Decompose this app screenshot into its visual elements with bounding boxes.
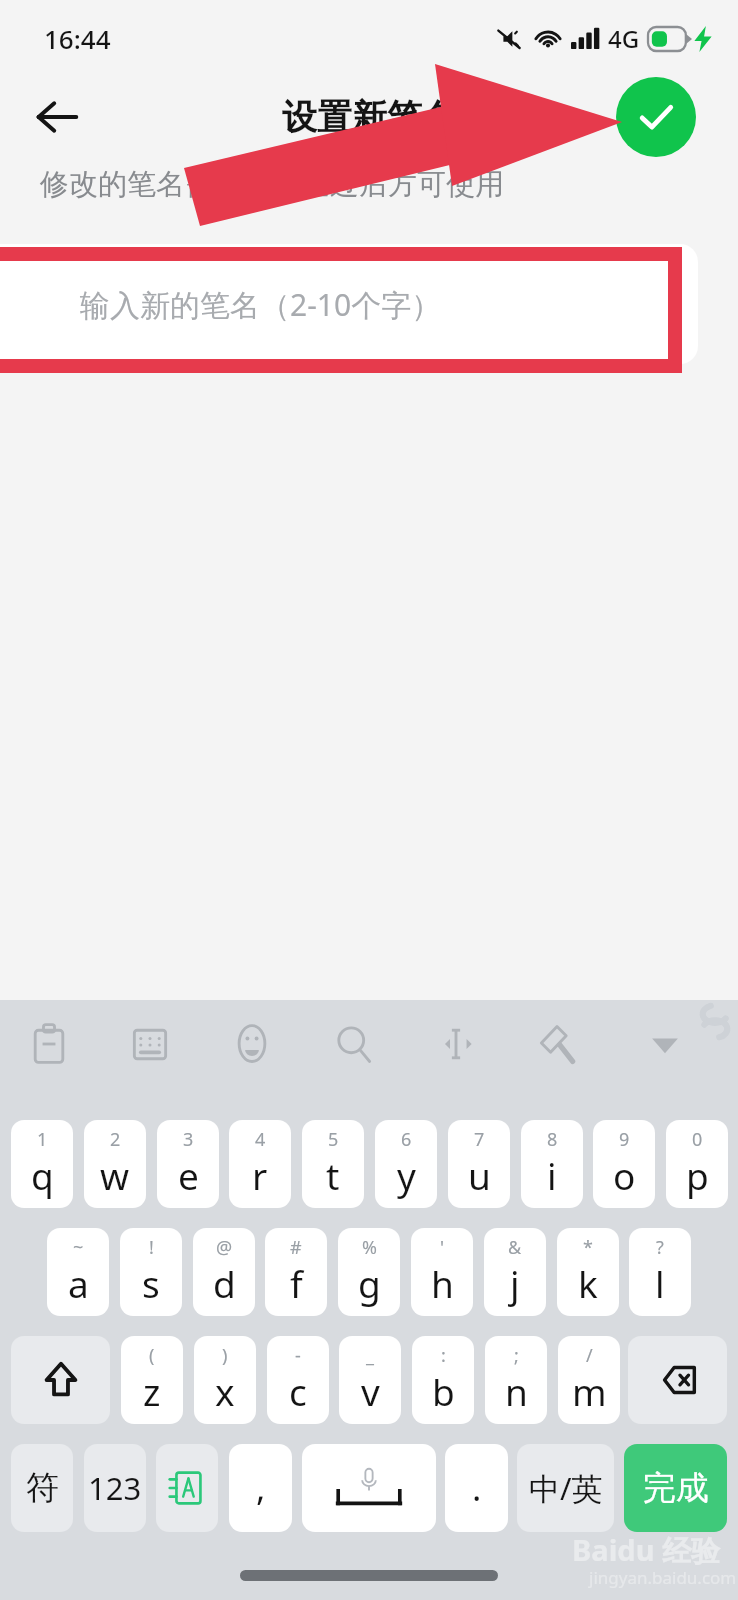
staticText: 设置新笔名 — [282, 95, 457, 139]
button[interactable]: 1 — [11, 1120, 73, 1208]
button[interactable]: % — [338, 1228, 400, 1316]
button[interactable]: 完成 — [624, 1444, 727, 1532]
button[interactable]: Search — [320, 1010, 388, 1078]
staticText: - — [295, 1343, 301, 1368]
staticText: / — [586, 1343, 593, 1368]
button[interactable]: ? — [629, 1228, 691, 1316]
staticText: 完成 — [643, 1467, 709, 1509]
staticText: b — [432, 1366, 455, 1416]
button[interactable]: 5 — [302, 1120, 364, 1208]
staticText: y — [397, 1150, 416, 1200]
button[interactable]: Move cursor — [422, 1010, 490, 1078]
staticText: 8 — [547, 1127, 558, 1152]
staticText: * — [583, 1235, 593, 1260]
button[interactable]: Theme — [523, 1010, 591, 1078]
staticText: % — [362, 1235, 377, 1260]
staticText: # — [290, 1235, 302, 1260]
staticText: 符 — [26, 1467, 59, 1509]
staticText: l — [655, 1258, 665, 1308]
button[interactable]: Clipboard — [15, 1010, 83, 1078]
button[interactable]: Keyboard layouts — [116, 1010, 184, 1078]
button[interactable]: / — [558, 1336, 620, 1424]
button[interactable]: 8 — [521, 1120, 583, 1208]
staticText: j — [510, 1258, 520, 1308]
staticText: ) — [222, 1343, 228, 1368]
button[interactable]: 中/英 — [517, 1444, 614, 1532]
button[interactable]: # — [265, 1228, 327, 1316]
staticText: ~ — [73, 1235, 84, 1260]
button[interactable]: . — [445, 1444, 508, 1532]
button[interactable]: Hide keyboard — [631, 1010, 699, 1078]
staticText: . — [472, 1464, 482, 1512]
staticText: ! — [149, 1235, 154, 1260]
button[interactable]: 符 — [11, 1444, 73, 1532]
staticText: 输入新的笔名（2-10个字） — [80, 284, 442, 325]
button[interactable]: Shift — [11, 1336, 110, 1424]
staticText: a — [68, 1258, 89, 1308]
staticText: m — [572, 1366, 607, 1416]
staticText: d — [213, 1258, 236, 1308]
staticText: x — [215, 1366, 235, 1416]
staticText: 4G — [608, 22, 640, 55]
button[interactable]: 4 — [229, 1120, 291, 1208]
staticText: @ — [216, 1235, 233, 1260]
button[interactable]: , — [229, 1444, 292, 1532]
staticText: z — [143, 1366, 161, 1416]
button[interactable]: _ — [339, 1336, 401, 1424]
staticText: 0 — [692, 1127, 703, 1152]
staticText: s — [142, 1258, 160, 1308]
staticText: v — [361, 1366, 380, 1416]
button[interactable]: 7 — [448, 1120, 510, 1208]
button[interactable]: Confirm — [616, 77, 696, 157]
button[interactable]: Space — [302, 1444, 436, 1532]
button[interactable]: * — [557, 1228, 619, 1316]
staticText: q — [31, 1150, 54, 1200]
staticText: ' — [440, 1235, 445, 1260]
button[interactable]: 输入新的笔名（2-10个字） — [0, 244, 698, 364]
button[interactable]: 6 — [375, 1120, 437, 1208]
staticText: , — [256, 1464, 266, 1512]
button[interactable]: - — [267, 1336, 329, 1424]
button[interactable]: Emoji — [218, 1010, 286, 1078]
staticText: p — [686, 1150, 709, 1200]
staticText: ; — [514, 1343, 519, 1368]
button[interactable]: Back — [22, 82, 92, 152]
button[interactable]: 0 — [666, 1120, 728, 1208]
staticText: 9 — [619, 1127, 630, 1152]
staticText: u — [468, 1150, 491, 1200]
staticText: w — [100, 1150, 130, 1200]
staticText: jingyan.baidu.com — [589, 1566, 737, 1589]
button[interactable]: ( — [121, 1336, 183, 1424]
button[interactable]: ! — [120, 1228, 182, 1316]
button[interactable]: Switch input language — [156, 1444, 218, 1532]
staticText: 修改的笔名需在审核通过后方可使用 — [40, 166, 504, 203]
staticText: & — [508, 1235, 522, 1260]
button[interactable]: ~ — [47, 1228, 109, 1316]
staticText: e — [178, 1150, 199, 1200]
button[interactable]: @ — [193, 1228, 255, 1316]
button[interactable]: ) — [194, 1336, 256, 1424]
staticText: 4 — [255, 1127, 266, 1152]
staticText: 2 — [110, 1127, 121, 1152]
staticText: g — [358, 1258, 381, 1308]
button[interactable]: : — [412, 1336, 474, 1424]
button[interactable]: & — [484, 1228, 546, 1316]
staticText: ( — [149, 1343, 155, 1368]
staticText: i — [547, 1150, 557, 1200]
button[interactable]: ' — [411, 1228, 473, 1316]
button[interactable]: 9 — [593, 1120, 655, 1208]
button[interactable]: 123 — [84, 1444, 146, 1532]
staticText: ? — [656, 1235, 664, 1260]
staticText: k — [578, 1258, 598, 1308]
staticText: o — [613, 1150, 636, 1200]
button[interactable]: ; — [485, 1336, 547, 1424]
staticText: h — [431, 1258, 454, 1308]
staticText: 5 — [328, 1127, 339, 1152]
button[interactable]: Delete — [628, 1336, 727, 1424]
staticText: 123 — [88, 1467, 142, 1509]
staticText: 7 — [474, 1127, 485, 1152]
staticText: 16:44 — [44, 21, 111, 56]
button[interactable]: 3 — [157, 1120, 219, 1208]
button[interactable]: 2 — [84, 1120, 146, 1208]
staticText: 中/英 — [529, 1467, 603, 1509]
